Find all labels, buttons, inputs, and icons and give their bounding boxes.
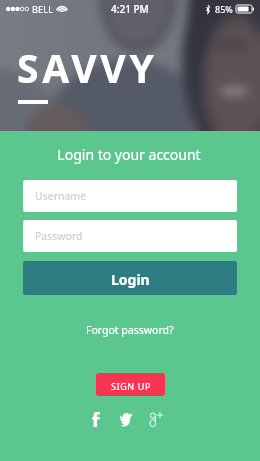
staticText: Forgot password?	[86, 323, 174, 337]
button[interactable]: Username	[23, 180, 237, 212]
staticText: 85%	[215, 3, 233, 15]
button[interactable]: Forgot password?	[80, 321, 180, 339]
button[interactable]: Google Plus	[145, 408, 167, 430]
staticText: SAVVY	[17, 41, 158, 94]
staticText: SIGN UP	[111, 380, 151, 392]
staticText: Username	[35, 189, 87, 203]
button[interactable]: Password	[23, 220, 237, 252]
staticText: Password	[35, 229, 83, 243]
staticText: Login to your account	[0, 145, 259, 164]
button[interactable]: Twitter	[115, 408, 137, 430]
button[interactable]: Login	[23, 261, 237, 295]
staticText: 4:21 PM	[111, 2, 149, 16]
staticText: Login	[111, 270, 150, 289]
staticText: BELL	[32, 3, 54, 15]
button[interactable]: Facebook	[85, 408, 107, 430]
button[interactable]: SIGN UP	[96, 373, 165, 396]
